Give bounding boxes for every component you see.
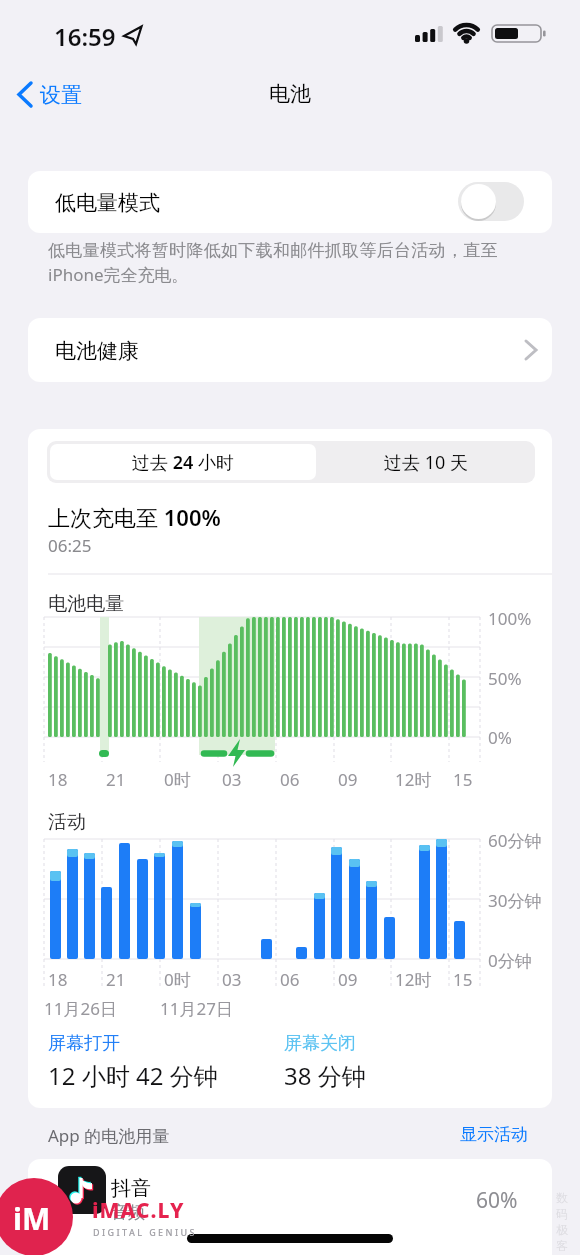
staticText: App 的电池用量 — [48, 1124, 170, 1147]
button[interactable] — [28, 318, 552, 382]
staticText: 显示活动 — [460, 1124, 528, 1145]
staticText: 设置 — [40, 82, 82, 108]
staticText: 活动 — [48, 810, 86, 834]
staticText: 03 — [222, 968, 242, 991]
staticText: 音频 — [111, 1202, 145, 1223]
staticText: 电池健康 — [55, 338, 139, 364]
button[interactable] — [458, 182, 524, 221]
staticText: 屏幕打开 — [48, 1032, 120, 1055]
button[interactable] — [28, 1159, 552, 1255]
staticText: 0时 — [164, 968, 191, 991]
staticText: 过去 24 小时 — [132, 450, 234, 475]
staticText: iM — [13, 1198, 51, 1239]
staticText: 12时 — [395, 768, 432, 791]
staticText: 09 — [338, 768, 358, 791]
staticText: 06 — [280, 968, 300, 991]
staticText: 0% — [488, 726, 512, 749]
button[interactable] — [14, 76, 94, 112]
staticText: 60% — [476, 1186, 518, 1215]
staticText: 06 — [280, 768, 300, 791]
staticText: 15 — [453, 768, 473, 791]
staticText: 16:59 — [54, 20, 116, 53]
staticText: 数 码 极 客 — [556, 1190, 568, 1254]
staticText: 09 — [338, 968, 358, 991]
staticText: 低电量模式 — [55, 190, 160, 216]
staticText: 电池 — [269, 81, 311, 107]
staticText: 18 — [48, 768, 68, 791]
staticText: 21 — [106, 768, 126, 791]
staticText: 30分钟 — [488, 889, 542, 912]
staticText: 18 — [48, 968, 68, 991]
staticText: 11月26日 — [44, 997, 117, 1020]
staticText: 0分钟 — [488, 949, 532, 972]
staticText: 60分钟 — [488, 829, 542, 852]
staticText: 100% — [488, 607, 532, 630]
staticText: 38 分钟 — [284, 1059, 366, 1092]
staticText: DIGITAL GENIUS — [93, 1226, 197, 1238]
staticText: 11月27日 — [160, 997, 233, 1020]
staticText: iPhone完全充电。 — [48, 263, 189, 286]
staticText: 过去 10 天 — [384, 450, 468, 475]
staticText: 上次充电至 100% — [48, 502, 221, 532]
button[interactable]: 显示活动 — [456, 1120, 546, 1148]
staticText: iMAC.LY — [92, 1196, 185, 1225]
button[interactable] — [28, 171, 552, 233]
staticText: 抖音 — [111, 1176, 151, 1201]
staticText: 屏幕关闭 — [284, 1032, 356, 1055]
staticText: 12 小时 42 分钟 — [48, 1059, 218, 1092]
staticText: 12时 — [395, 968, 432, 991]
button[interactable] — [50, 444, 316, 480]
staticText: 电池电量 — [48, 592, 124, 616]
staticText: 50% — [488, 667, 522, 690]
staticText: 03 — [222, 768, 242, 791]
button[interactable]: 过去 10 天 — [316, 444, 535, 480]
staticText: 0时 — [164, 768, 191, 791]
staticText: 21 — [106, 968, 126, 991]
staticText: 15 — [453, 968, 473, 991]
staticText: 低电量模式将暂时降低如下载和邮件抓取等后台活动，直至 — [48, 240, 498, 261]
staticText: 06:25 — [48, 534, 92, 557]
